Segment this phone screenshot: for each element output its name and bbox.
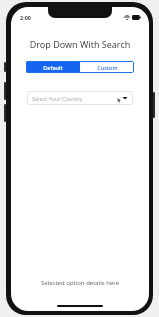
staticText: Default: [43, 64, 63, 71]
button[interactable]: Custom: [80, 61, 134, 73]
staticText: Selected option details here: [11, 279, 149, 287]
staticText: Custom: [97, 64, 118, 71]
other: Open dropdown: [122, 95, 128, 101]
button[interactable]: Select Your Country: [27, 91, 133, 105]
button[interactable]: Default: [26, 61, 80, 73]
staticText: 2:00: [20, 14, 31, 21]
staticText: Drop Down With Search: [11, 38, 149, 50]
staticText: Select Your Country: [32, 95, 122, 102]
